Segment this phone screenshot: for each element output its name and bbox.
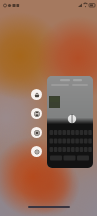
button[interactable] — [47, 76, 93, 168]
button[interactable]: Settings — [31, 146, 42, 157]
button[interactable]: Save — [31, 108, 42, 119]
button[interactable]: Screenshot — [31, 127, 42, 138]
button[interactable]: Lock — [31, 89, 42, 100]
